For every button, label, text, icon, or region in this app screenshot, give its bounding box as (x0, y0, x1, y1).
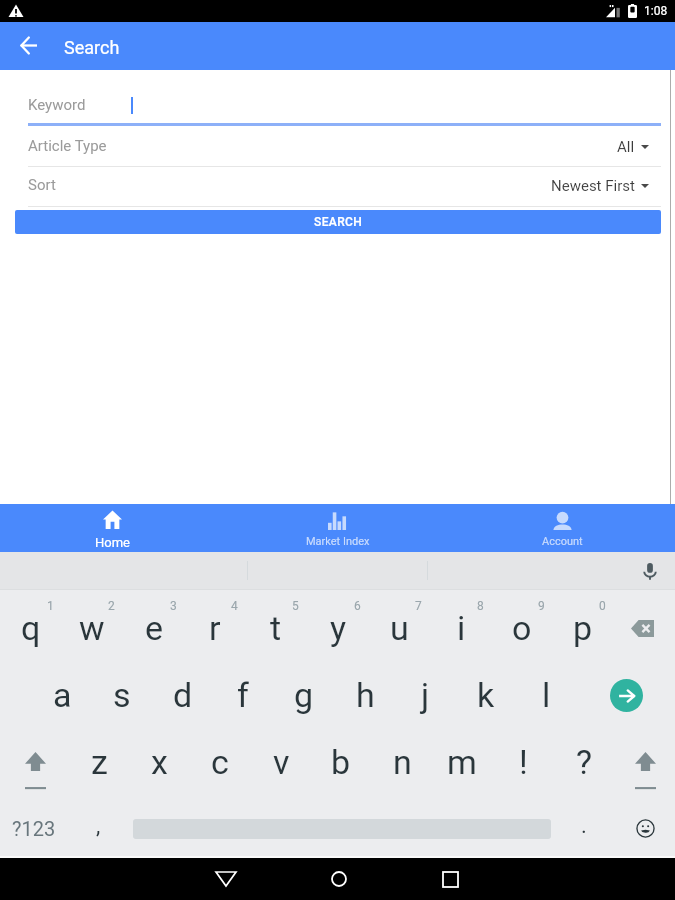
button[interactable]: e (124, 595, 184, 661)
button[interactable]: o (492, 595, 552, 661)
button[interactable]: SEARCH (15, 210, 661, 234)
button[interactable]: Shift (5, 738, 65, 804)
staticText: ? (576, 742, 593, 782)
staticText: 3 (170, 599, 177, 613)
button[interactable]: Back (196, 858, 256, 900)
button[interactable]: z (69, 729, 129, 795)
staticText: o (512, 608, 532, 648)
staticText: r (209, 608, 221, 648)
staticText: b (331, 742, 351, 782)
staticText: 5 (292, 599, 299, 613)
staticText: a (53, 675, 72, 715)
button[interactable]: f (213, 662, 273, 728)
button[interactable]: Recent apps (420, 858, 480, 900)
button[interactable]: h (335, 662, 395, 728)
button[interactable]: a (32, 662, 92, 728)
button[interactable]: w (62, 595, 122, 661)
button[interactable]: ?123 (4, 795, 64, 861)
staticText: Home (95, 535, 130, 550)
button[interactable]: g (274, 662, 334, 728)
button[interactable]: q (1, 595, 61, 661)
button[interactable]: Account (450, 504, 675, 552)
button[interactable]: , (68, 793, 128, 859)
button[interactable]: Home (309, 858, 369, 900)
staticText: Account (542, 535, 583, 548)
button[interactable]: Enter (596, 662, 656, 728)
button[interactable]: . (554, 793, 614, 859)
staticText: s (113, 675, 131, 715)
staticText: 6 (354, 599, 361, 613)
button[interactable]: y (308, 595, 368, 661)
staticText: 9 (538, 599, 545, 613)
staticText: Article Type (28, 137, 107, 155)
button[interactable]: p (553, 595, 613, 661)
staticText: z (91, 742, 108, 782)
staticText: Search (64, 37, 120, 58)
button[interactable]: m (432, 729, 492, 795)
button[interactable]: Shift (615, 738, 675, 804)
staticText: w (79, 608, 105, 648)
staticText: u (390, 608, 409, 648)
staticText: Sort (28, 176, 56, 194)
staticText: 2 (108, 599, 115, 613)
button[interactable]: ! (493, 729, 553, 795)
staticText: f (237, 675, 249, 715)
staticText: ! (519, 742, 528, 782)
staticText: d (173, 675, 193, 715)
button[interactable]: ? (554, 729, 614, 795)
button[interactable]: c (190, 729, 250, 795)
staticText: t (270, 608, 282, 648)
button[interactable]: Sort (0, 167, 675, 205)
staticText: h (356, 675, 375, 715)
staticText: n (393, 742, 412, 782)
staticText: y (330, 608, 347, 648)
staticText: i (457, 608, 466, 648)
button[interactable]: u (369, 595, 429, 661)
staticText: l (542, 675, 551, 715)
button[interactable]: Home (0, 504, 225, 552)
staticText: Keyword (28, 96, 86, 114)
staticText: ?123 (12, 817, 56, 840)
button[interactable]: t (246, 595, 306, 661)
staticText: 1:08 (644, 4, 668, 18)
staticText: , (96, 813, 101, 839)
button[interactable]: Article Type (0, 128, 675, 166)
button[interactable]: s (92, 662, 152, 728)
staticText: k (477, 675, 495, 715)
staticText: 7 (415, 599, 422, 613)
button[interactable]: Backspace (612, 595, 672, 661)
staticText: 1 (47, 599, 54, 613)
button[interactable]: d (153, 662, 213, 728)
button[interactable]: Back (16, 33, 41, 58)
staticText: Market Index (306, 535, 370, 548)
button[interactable]: l (516, 662, 576, 728)
staticText: c (211, 742, 229, 782)
staticText: p (573, 608, 593, 648)
button[interactable]: n (372, 729, 432, 795)
button[interactable]: k (456, 662, 516, 728)
button[interactable]: v (251, 729, 311, 795)
button[interactable]: i (431, 595, 491, 661)
staticText: Newest First (551, 177, 635, 195)
staticText: e (145, 608, 164, 648)
button[interactable]: x (129, 729, 189, 795)
staticText: q (21, 608, 41, 648)
staticText: 0 (599, 599, 606, 613)
staticText: v (273, 742, 290, 782)
staticText: 8 (477, 599, 484, 613)
button[interactable]: b (311, 729, 371, 795)
staticText: g (294, 675, 314, 715)
staticText: 4 (231, 599, 238, 613)
staticText: SEARCH (314, 215, 363, 229)
staticText: j (421, 675, 430, 715)
staticText: All (617, 138, 635, 156)
button[interactable]: j (395, 662, 455, 728)
staticText: x (151, 742, 168, 782)
button[interactable] (0, 86, 675, 123)
staticText: . (581, 813, 587, 839)
button[interactable]: Emoji (615, 795, 675, 861)
button[interactable]: Voice input (638, 559, 661, 582)
button[interactable]: r (185, 595, 245, 661)
button[interactable]: Market Index (225, 504, 450, 552)
